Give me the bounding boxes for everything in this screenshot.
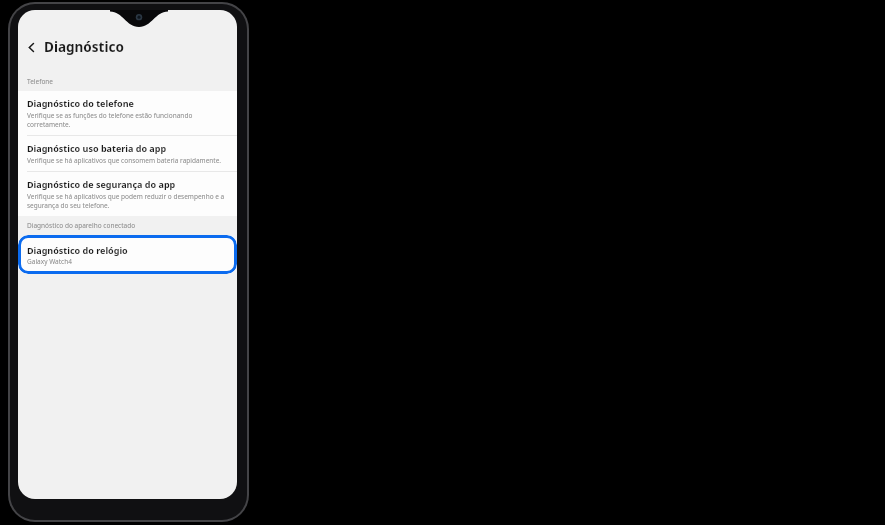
button[interactable]: Diagnóstico do relógio (18, 235, 237, 274)
button[interactable]: Diagnóstico uso bateria do app (18, 136, 237, 171)
staticText: Verifique se há aplicativos que consomem… (27, 156, 222, 165)
staticText: Galaxy Watch4 (27, 257, 72, 266)
button[interactable]: Voltar (18, 34, 44, 60)
button[interactable]: Diagnóstico de segurança do app (18, 172, 237, 216)
staticText: Telefone (27, 77, 54, 86)
staticText: Diagnóstico uso bateria do app (27, 142, 167, 154)
staticText: Diagnóstico do aparelho conectado (27, 221, 136, 230)
staticText: Verifique se as funções do telefone estã… (27, 111, 227, 129)
staticText: Verifique se há aplicativos que podem re… (27, 192, 227, 210)
staticText: Diagnóstico do relógio (27, 244, 128, 256)
staticText: Diagnóstico do telefone (27, 97, 134, 109)
staticText: Diagnóstico (44, 38, 124, 56)
button[interactable]: Diagnóstico do telefone (18, 91, 237, 135)
staticText: Diagnóstico de segurança do app (27, 178, 176, 190)
